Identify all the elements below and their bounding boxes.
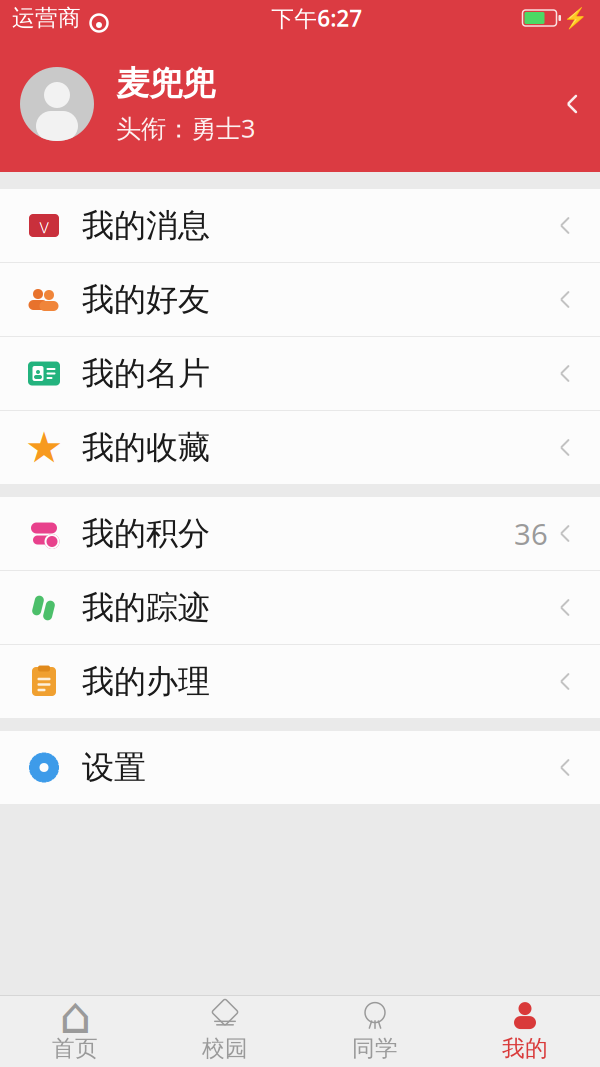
- staticText: 我的办理: [82, 662, 210, 701]
- staticText: 我的好友: [82, 280, 210, 319]
- staticText: ★: [25, 423, 63, 472]
- staticText: 设置: [82, 748, 146, 787]
- button[interactable]: 设置: [0, 731, 600, 804]
- staticText: ⚡: [563, 7, 588, 29]
- staticText: 下午6:27: [271, 3, 362, 33]
- button[interactable]: v: [0, 189, 600, 263]
- button[interactable]: 麦兜兜: [0, 36, 600, 172]
- staticText: 校园: [202, 1035, 248, 1062]
- staticText: v: [39, 212, 48, 239]
- staticText: ⌂: [59, 987, 91, 1044]
- button[interactable]: 我的办理: [0, 645, 600, 718]
- staticText: 我的积分: [82, 514, 210, 553]
- button[interactable]: ★: [0, 411, 600, 484]
- button[interactable]: 我的好友: [0, 263, 600, 337]
- button[interactable]: ⌂: [0, 995, 150, 1067]
- staticText: 我的踪迹: [82, 588, 210, 627]
- button[interactable]: 我的踪迹: [0, 571, 600, 645]
- staticText: 麦兜兜: [116, 63, 215, 104]
- button[interactable]: 同学: [300, 995, 450, 1067]
- button[interactable]: 我的积分: [0, 497, 600, 571]
- button[interactable]: 校园: [150, 995, 300, 1067]
- staticText: 我的: [502, 1035, 548, 1062]
- staticText: 我的名片: [82, 354, 210, 393]
- button[interactable]: 我的: [450, 995, 600, 1067]
- staticText: 我的消息: [82, 206, 210, 245]
- staticText: 我的收藏: [82, 428, 210, 467]
- staticText: 头衔：勇士3: [116, 111, 255, 145]
- staticText: 36: [514, 514, 548, 553]
- staticText: 运营商: [12, 4, 81, 32]
- staticText: 同学: [352, 1035, 398, 1062]
- staticText: 首页: [52, 1035, 98, 1062]
- button[interactable]: 我的名片: [0, 337, 600, 411]
